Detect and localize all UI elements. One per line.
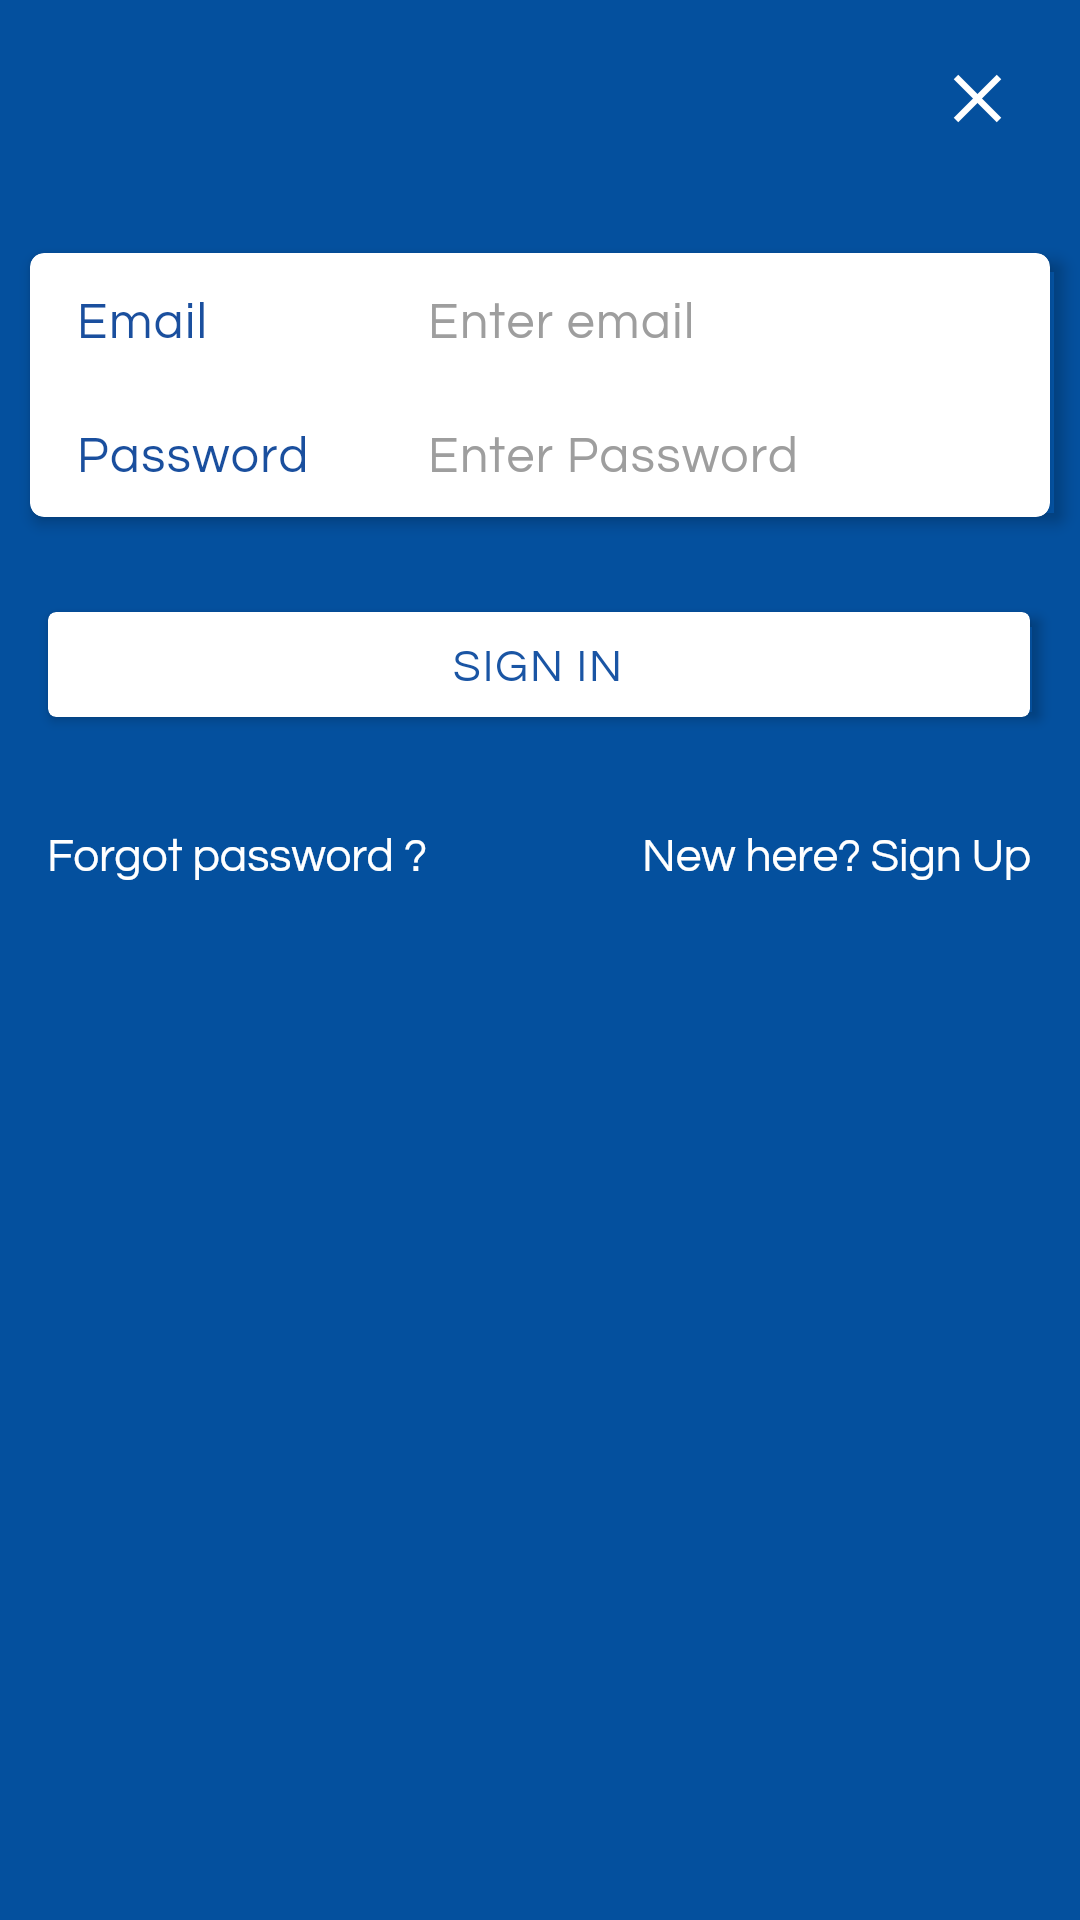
button[interactable]: Forgot password ? [47, 825, 428, 887]
button[interactable]: SIGN IN [48, 612, 1030, 717]
button[interactable]: Email [30, 257, 1050, 389]
staticText: Enter Password [428, 431, 800, 483]
button[interactable]: New here? Sign Up [642, 833, 1032, 880]
button[interactable]: Password [30, 393, 1050, 517]
staticText: Password [77, 431, 310, 483]
staticText: New here? Sign Up [642, 833, 1032, 880]
button[interactable] [944, 65, 1010, 131]
staticText: SIGN IN [453, 644, 625, 690]
staticText: Email [77, 297, 209, 349]
staticText: Enter email [428, 297, 696, 349]
staticText: Forgot password ? [47, 833, 428, 880]
